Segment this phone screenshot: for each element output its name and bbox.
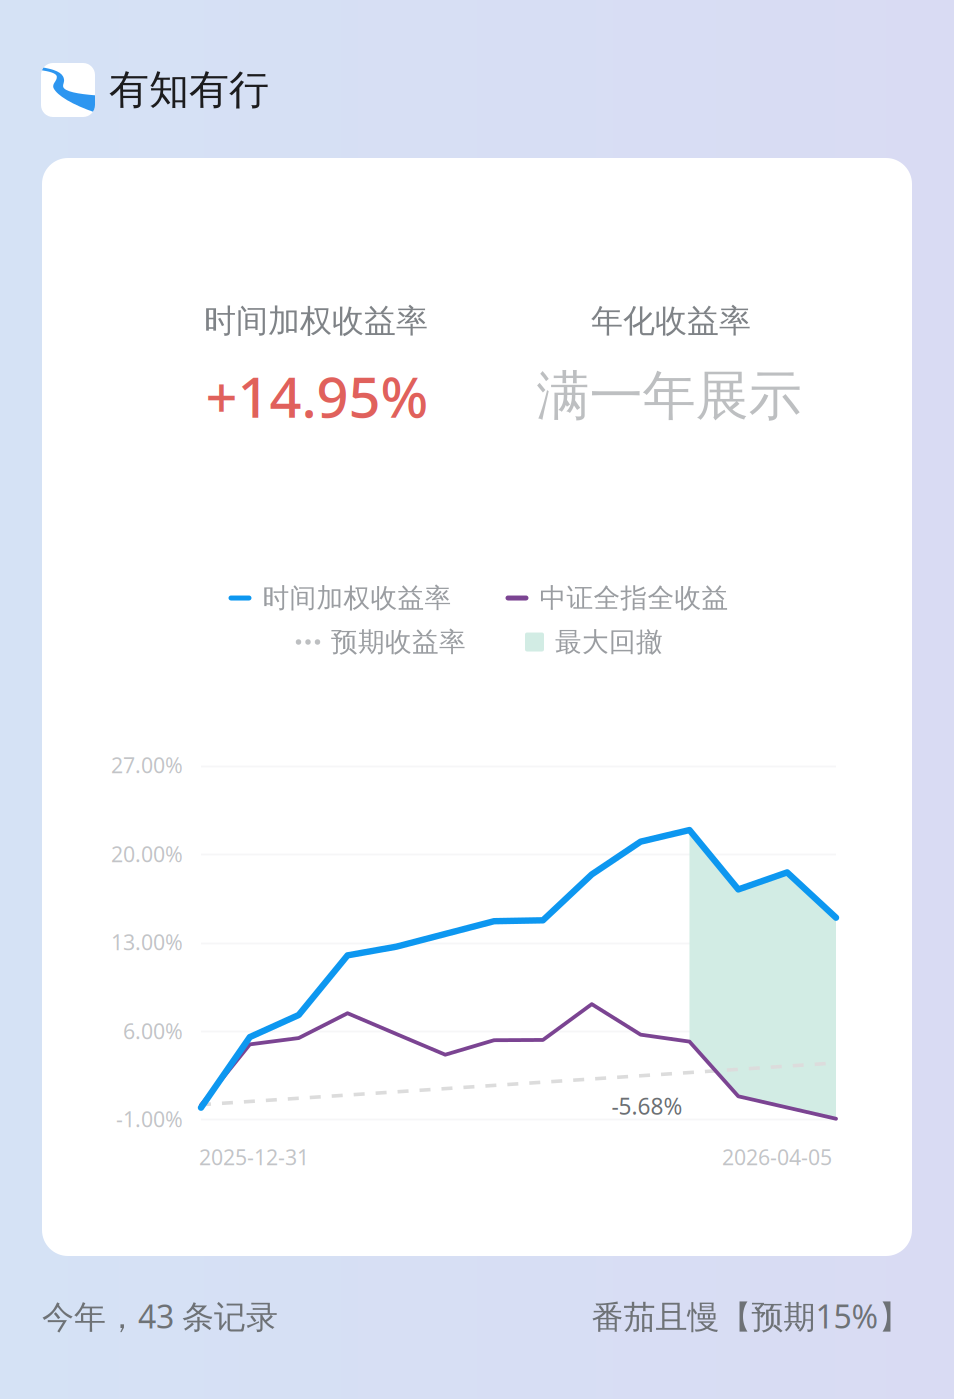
staticText: -5.68% (611, 1091, 682, 1121)
staticText: 13.00% (111, 928, 183, 956)
staticText: 满一年展示 (536, 363, 801, 429)
staticText: 时间加权收益率 (204, 301, 428, 341)
staticText: 6.00% (123, 1017, 183, 1045)
staticText: +14.95% (205, 359, 428, 433)
staticText: 2025-12-31 (199, 1143, 309, 1171)
staticText: 有知有行 (109, 65, 269, 114)
staticText: -1.00% (116, 1105, 183, 1133)
button[interactable]: 番茄且慢【预期15%】 (591, 1295, 910, 1337)
staticText: 时间加权收益率 (262, 582, 451, 614)
staticText: 27.00% (111, 751, 183, 779)
staticText: 今年，43 条记录 (42, 1295, 278, 1337)
staticText: 最大回撤 (555, 626, 663, 658)
staticText: 2026-04-05 (722, 1143, 832, 1171)
staticText: 年化收益率 (591, 301, 751, 341)
staticText: 中证全指全收益 (539, 582, 728, 614)
staticText: 番茄且慢【预期15%】 (591, 1295, 910, 1337)
staticText: 20.00% (111, 840, 183, 868)
button[interactable]: 今年，43 条记录 (42, 1295, 278, 1337)
staticText: 预期收益率 (331, 626, 466, 658)
button[interactable]: 有知有行 (41, 63, 269, 117)
